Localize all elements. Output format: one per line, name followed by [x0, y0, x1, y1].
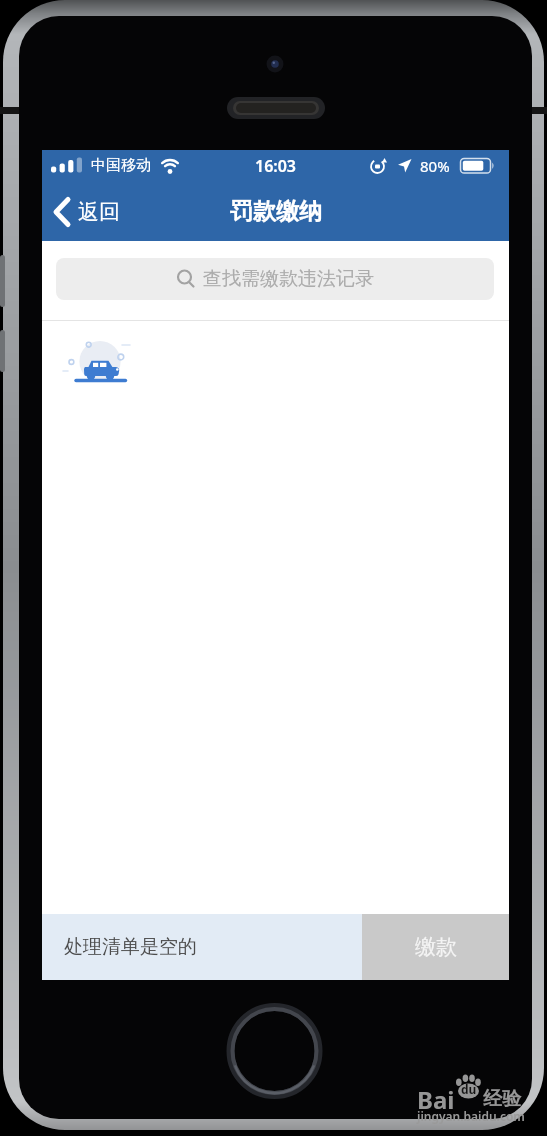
staticText: 经验	[483, 1087, 521, 1111]
staticText: 罚款缴纳	[230, 197, 322, 226]
button[interactable]: 查找需缴款违法记录	[56, 258, 494, 300]
staticText: 16:03	[255, 155, 297, 177]
button[interactable]: 缴款	[362, 914, 509, 980]
staticText: 缴款	[415, 934, 457, 960]
staticText: 处理清单是空的	[64, 935, 197, 959]
staticText: jingyan.baidu.com	[417, 1108, 525, 1124]
staticText: 中国移动	[91, 156, 151, 175]
staticText: 80%	[420, 156, 450, 176]
staticText: du	[461, 1081, 477, 1097]
staticText: Bai	[417, 1083, 455, 1116]
staticText: 返回	[78, 199, 120, 225]
staticText: 查找需缴款违法记录	[203, 267, 374, 291]
button[interactable]: 返回	[52, 197, 120, 227]
